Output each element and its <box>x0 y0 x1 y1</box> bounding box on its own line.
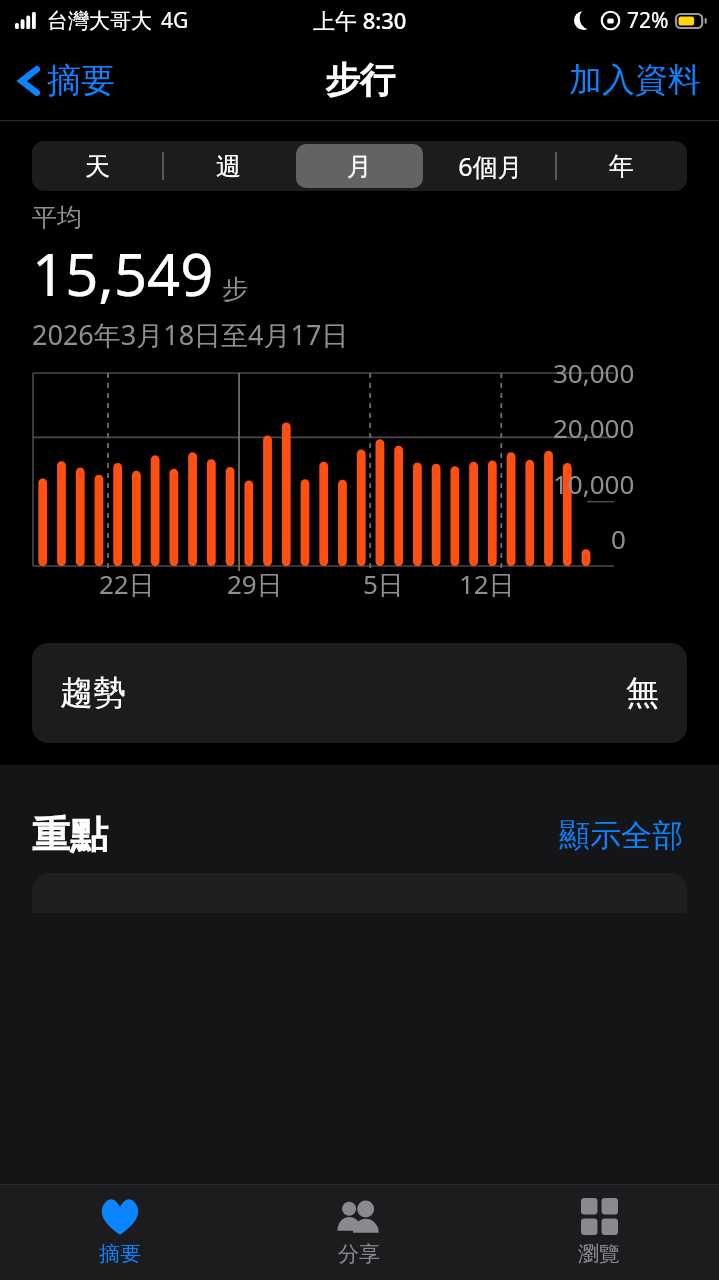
button[interactable]: Summary <box>0 1185 239 1280</box>
staticText: 上午 8:30 <box>313 5 407 35</box>
staticText: 2026年3月18日至4月17日 <box>32 316 349 353</box>
staticText: 加入資料 <box>569 59 701 101</box>
button[interactable]: Sharing <box>239 1185 479 1280</box>
staticText: 月 <box>347 151 372 182</box>
button[interactable]: 月 <box>296 144 423 188</box>
staticText: 台灣大哥大 <box>47 8 152 34</box>
staticText: 重點 <box>32 811 108 859</box>
staticText: 4G <box>161 6 189 35</box>
staticText: 29日 <box>227 566 283 602</box>
staticText: 15,549 <box>32 234 214 313</box>
staticText: 摘要 <box>99 1241 141 1267</box>
staticText: 72% <box>627 6 669 35</box>
staticText: 步行 <box>325 58 395 102</box>
button[interactable]: 趨勢 <box>32 643 687 743</box>
staticText: 週 <box>216 151 241 182</box>
staticText: 12日 <box>459 566 515 602</box>
button[interactable]: 6個月 <box>427 144 554 188</box>
button[interactable]: 加入資料 <box>563 51 707 109</box>
staticText: 6個月 <box>458 149 523 183</box>
button[interactable]: 週 <box>165 144 292 188</box>
staticText: 顯示全部 <box>559 816 683 855</box>
button[interactable]: 顯示全部 <box>555 812 687 859</box>
button[interactable]: 年 <box>558 144 685 188</box>
staticText: 年 <box>609 151 634 182</box>
staticText: 0 <box>611 521 626 556</box>
button[interactable]: 摘要 <box>10 53 121 108</box>
staticText: 趨勢 <box>60 672 126 714</box>
staticText: 5日 <box>363 566 404 602</box>
staticText: 分享 <box>338 1241 380 1267</box>
staticText: 30,000 <box>553 355 635 390</box>
staticText: 無 <box>626 672 659 714</box>
staticText: 平均 <box>32 202 82 233</box>
staticText: 10,000 <box>553 466 635 501</box>
staticText: 20,000 <box>553 410 635 445</box>
button[interactable]: Browse <box>479 1185 719 1280</box>
other: Sharing <box>336 1199 382 1235</box>
staticText: 步 <box>222 273 248 306</box>
staticText: 22日 <box>99 566 155 602</box>
staticText: 摘要 <box>47 59 115 102</box>
button[interactable]: 天 <box>34 144 161 188</box>
staticText: 天 <box>85 151 110 182</box>
other: Summary <box>99 1199 141 1235</box>
other: Browse <box>581 1198 618 1235</box>
staticText: 瀏覽 <box>578 1241 620 1267</box>
